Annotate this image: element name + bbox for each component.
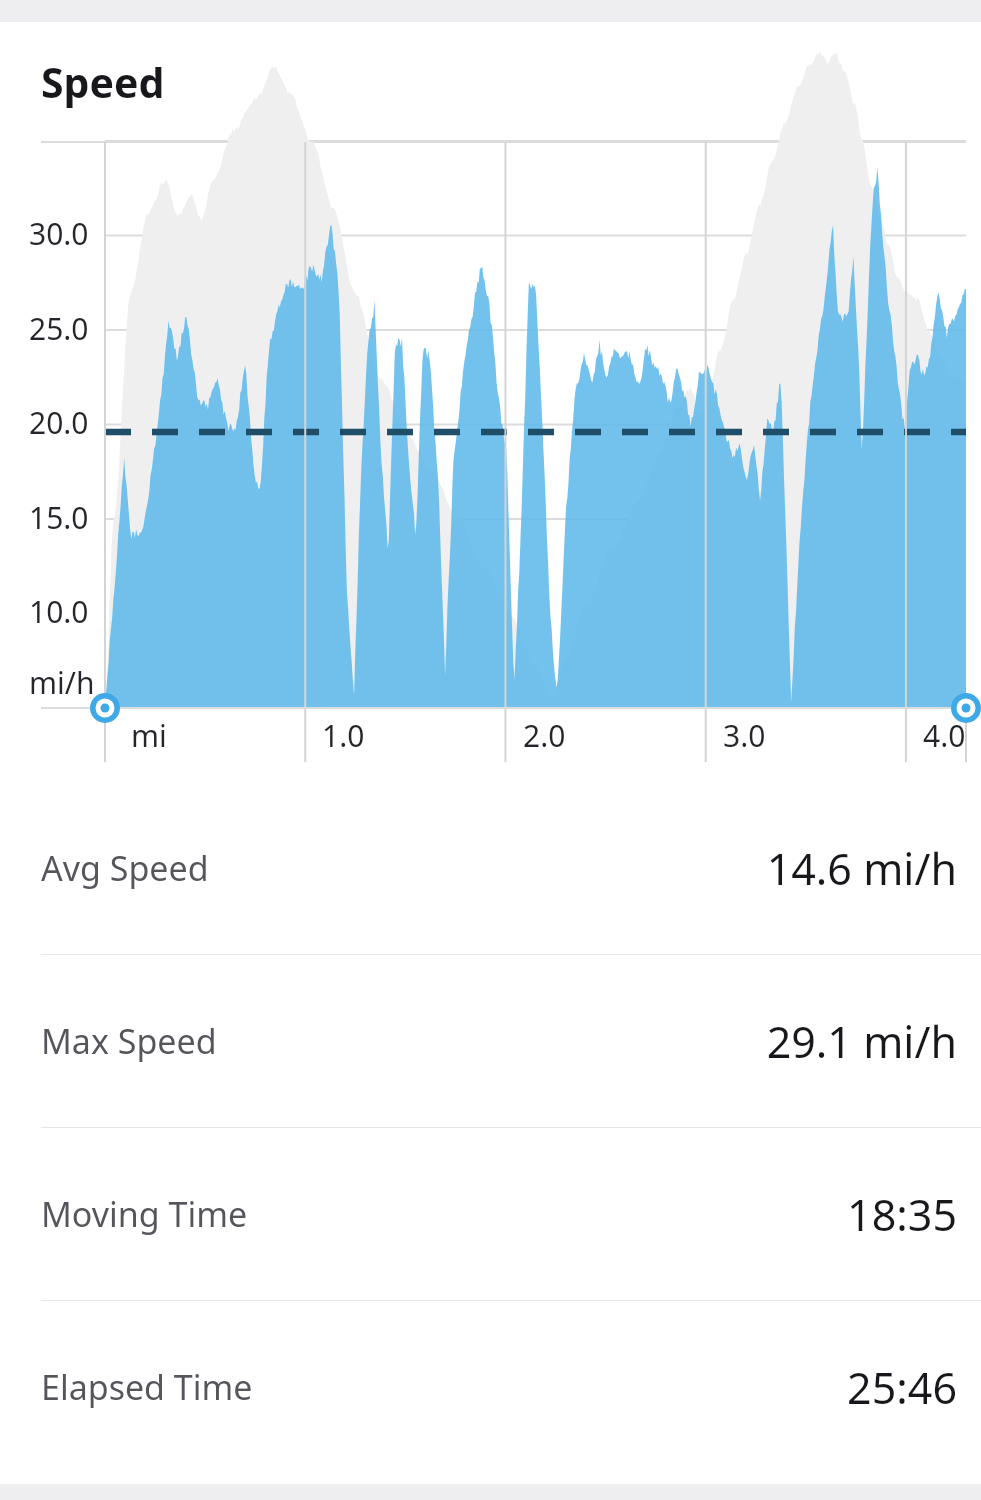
staticText: Elapsed Time xyxy=(41,1364,253,1410)
staticText: 2.0 xyxy=(523,715,566,756)
staticText: 25.0 xyxy=(29,308,89,349)
staticText: 18:35 xyxy=(847,1185,957,1244)
staticText: 25:46 xyxy=(847,1358,957,1417)
other: Speed over distance graph xyxy=(0,134,981,752)
staticText: 20.0 xyxy=(29,402,89,443)
staticText: 14.6 mi/h xyxy=(766,839,957,898)
staticText: mi xyxy=(131,715,167,756)
staticText: Moving Time xyxy=(41,1191,248,1237)
staticText: 30.0 xyxy=(29,213,89,254)
button[interactable]: Elapsed Time xyxy=(0,1300,981,1473)
staticText: 29.1 mi/h xyxy=(766,1012,957,1071)
button[interactable]: Max Speed xyxy=(0,954,981,1127)
staticText: 4.0 xyxy=(923,715,966,756)
staticText: 1.0 xyxy=(322,715,365,756)
staticText: 10.0 xyxy=(29,591,89,632)
button[interactable]: Avg Speed xyxy=(0,782,981,954)
staticText: 3.0 xyxy=(723,715,766,756)
button[interactable]: Moving Time xyxy=(0,1127,981,1300)
staticText: Speed xyxy=(41,54,165,110)
staticText: mi/h xyxy=(29,662,95,703)
staticText: Avg Speed xyxy=(41,845,209,891)
staticText: Max Speed xyxy=(41,1018,217,1064)
staticText: 15.0 xyxy=(29,497,89,538)
